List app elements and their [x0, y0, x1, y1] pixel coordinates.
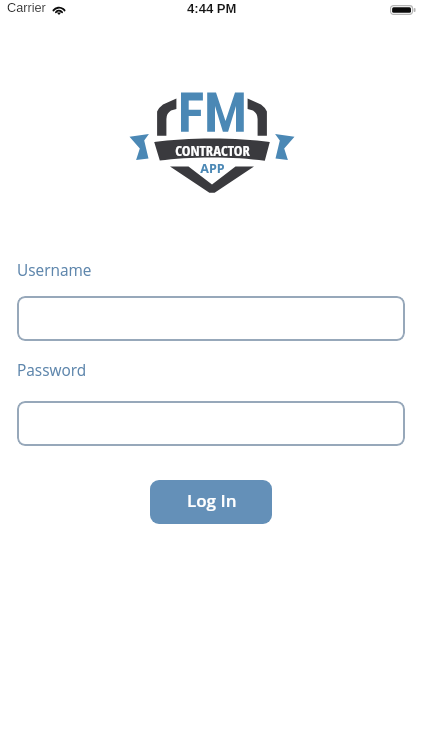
button[interactable]: Text field: [17, 296, 405, 341]
staticText: Log In: [187, 489, 237, 512]
staticText: APP: [200, 160, 225, 177]
staticText: Username: [17, 260, 92, 281]
other: Battery full: [390, 5, 416, 15]
staticText: 4:44 PM: [187, 1, 237, 16]
staticText: CONTRACTOR: [175, 140, 250, 160]
button[interactable]: Log In: [150, 480, 272, 524]
staticText: Carrier: [7, 1, 46, 15]
button[interactable]: Text field: [17, 401, 405, 446]
staticText: Password: [17, 360, 87, 381]
